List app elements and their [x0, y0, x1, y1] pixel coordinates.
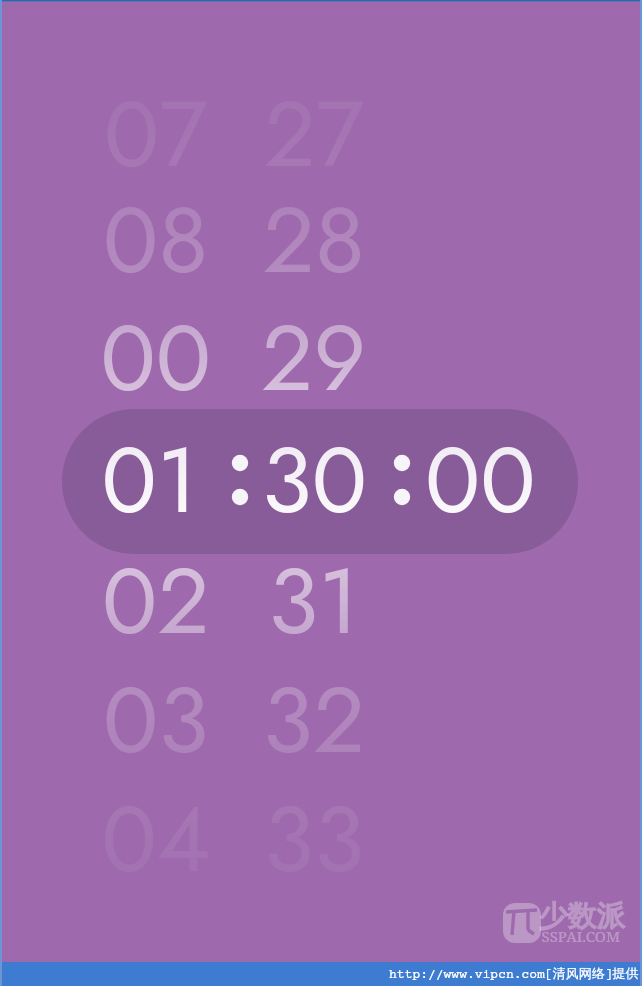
button[interactable]	[62, 409, 578, 554]
